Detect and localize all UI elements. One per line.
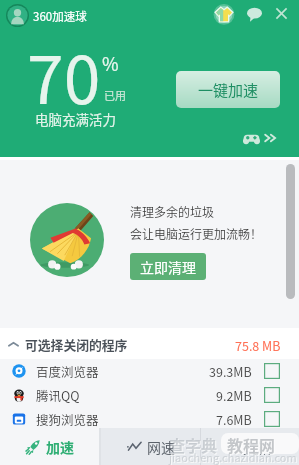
button[interactable]: 搜狗浏览器 [12, 407, 280, 431]
staticText: jiaocheng.chazidian.com [170, 450, 298, 465]
staticText: 工具箱 [229, 437, 271, 457]
staticText: 查字典 [170, 434, 219, 457]
button[interactable]: 可选择关闭的程序 [8, 330, 281, 359]
staticText: % [102, 50, 119, 76]
button[interactable]: Change skin [214, 4, 234, 24]
button[interactable]: 一键加速 [176, 71, 280, 108]
staticText: 70 [27, 27, 101, 123]
staticText: jiaocheng.chazidian.com [169, 449, 297, 465]
button[interactable]: 百度浏览器 [12, 359, 280, 383]
staticText: 已用 [104, 87, 126, 103]
button[interactable]: Select 百度浏览器 [264, 363, 280, 379]
button[interactable]: 工具箱 [201, 428, 299, 465]
staticText: 会让电脑运行更加流畅！ [130, 225, 263, 242]
staticText: 教程网 [227, 433, 276, 456]
button[interactable]: Close [274, 6, 289, 21]
button[interactable]: Select 腾讯QQ [264, 387, 280, 403]
button[interactable]: 腾讯QQ [12, 383, 280, 407]
staticText: 可选择关闭的程序 [25, 335, 128, 354]
staticText: 网速 [147, 437, 175, 457]
button[interactable]: Select 搜狗浏览器 [264, 411, 280, 427]
staticText: 百度浏览器 [36, 362, 99, 380]
button[interactable]: 立即清理 [130, 253, 206, 280]
button[interactable]: Account [6, 4, 29, 27]
staticText: 教程网 [228, 434, 277, 457]
button[interactable]: Feedback [247, 7, 262, 22]
staticText: 9.2MB [216, 386, 252, 404]
staticText: 加速 [46, 437, 74, 457]
staticText: 一键加速 [198, 79, 259, 101]
button[interactable]: 加速 [0, 428, 99, 465]
button[interactable]: Game booster [243, 132, 279, 144]
button[interactable]: 网速 [101, 428, 200, 465]
staticText: 75.8 MB [235, 336, 281, 354]
staticText: 电脑充满活力 [35, 109, 116, 129]
staticText: 清理多余的垃圾 [130, 203, 215, 220]
staticText: 立即清理 [140, 257, 196, 277]
staticText: 查字典 [169, 433, 218, 456]
staticText: 搜狗浏览器 [36, 410, 99, 428]
staticText: 腾讯QQ [36, 386, 80, 404]
staticText: 39.3MB [209, 362, 252, 380]
staticText: 360加速球 [33, 8, 87, 25]
staticText: 7.6MB [216, 410, 252, 428]
